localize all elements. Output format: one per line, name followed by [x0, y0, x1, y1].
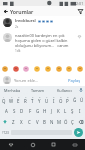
staticText: J [51, 108, 53, 114]
button[interactable]: M [55, 116, 62, 127]
staticText: 2 [11, 95, 13, 98]
button[interactable]: Emoji [77, 66, 83, 72]
staticText: lreokbursl [15, 18, 36, 24]
staticText: I [79, 108, 81, 114]
button[interactable]: B [41, 116, 48, 127]
button[interactable]: Tamam [25, 86, 51, 94]
staticText: L [64, 108, 67, 114]
button[interactable]: S [10, 105, 18, 116]
button[interactable]: Keyboard [64, 139, 85, 150]
button[interactable]: H [41, 105, 48, 116]
staticText: 2s [15, 25, 19, 29]
button[interactable]: Recents [43, 139, 64, 150]
button[interactable]: Like [76, 33, 82, 39]
staticText: Y [38, 98, 41, 104]
button[interactable]: Emoji [56, 66, 62, 72]
staticText: 8 [53, 95, 55, 98]
staticText: 6 [39, 95, 41, 98]
staticText: W [9, 98, 14, 104]
button[interactable]: Home [22, 139, 43, 150]
button[interactable]: Emoji [45, 66, 51, 72]
button[interactable]: N [48, 116, 55, 127]
staticText: O [59, 98, 63, 104]
staticText: V [36, 119, 39, 125]
button[interactable]: Ö [62, 116, 69, 127]
button[interactable]: V [33, 116, 41, 127]
button[interactable]: Back [0, 6, 10, 16]
button[interactable]: I [76, 105, 83, 116]
button[interactable]: F [26, 105, 34, 116]
button[interactable]: Yorum ekle... [14, 78, 67, 83]
staticText: B [43, 119, 46, 125]
button[interactable]: 8 [50, 94, 57, 105]
button[interactable]: 7 [43, 94, 50, 105]
staticText: 4 [25, 95, 27, 98]
button[interactable]: 2 [8, 94, 15, 105]
staticText: R [24, 98, 27, 104]
staticText: M [57, 119, 61, 125]
button[interactable]: Ü [78, 94, 85, 105]
button[interactable]: G [34, 105, 41, 116]
button[interactable]: A [2, 105, 10, 116]
staticText: H [43, 108, 47, 114]
staticText: A [5, 108, 8, 114]
button[interactable]: Emoji [34, 66, 40, 72]
staticText: 9 [60, 95, 62, 98]
button[interactable]: Emoji [23, 66, 29, 72]
button[interactable]: Shift [0, 116, 9, 127]
button[interactable]: K [55, 105, 62, 116]
button[interactable]: Emoji [13, 66, 19, 72]
button[interactable]: 0 [64, 94, 71, 105]
staticText: Ğ [73, 97, 77, 103]
button[interactable]: 4 [22, 94, 29, 105]
button[interactable]: Kullanıcı [51, 86, 77, 94]
button[interactable]: Emoji [66, 66, 72, 72]
staticText: S [13, 108, 16, 114]
staticText: nazaltin00 kardeşim en çok hoşuma giden … [15, 33, 76, 48]
staticText: C [28, 119, 31, 125]
staticText: Ö [64, 119, 68, 125]
button[interactable]: Filter [75, 6, 85, 16]
button[interactable]: lreokbursl [0, 16, 85, 31]
staticText: Ş [71, 108, 74, 114]
button[interactable]: nazaltin00 kardeşim en çok hoşuma giden … [0, 31, 85, 55]
button[interactable]: X [17, 116, 25, 127]
button[interactable]: Backspace [76, 116, 85, 127]
staticText: 0 [67, 95, 69, 98]
staticText: Yorum ekle... [14, 78, 39, 83]
button[interactable]: Ğ [71, 94, 78, 105]
staticText: Yorumlar [10, 8, 34, 15]
staticText: 7 [46, 95, 48, 98]
button[interactable]: Ç [69, 116, 76, 127]
button[interactable]: J [48, 105, 55, 116]
staticText: K [57, 108, 60, 114]
staticText: E [17, 98, 20, 104]
staticText: Ç [71, 119, 74, 125]
staticText: I [53, 98, 55, 104]
button[interactable]: D [18, 105, 26, 116]
button[interactable]: 9 [57, 94, 64, 105]
button[interactable]: Back [0, 139, 22, 150]
button[interactable]: 1 [0, 94, 8, 105]
button[interactable]: 6 [36, 94, 43, 105]
staticText: Z [12, 119, 15, 125]
staticText: Tamam [31, 88, 45, 93]
button[interactable]: C [25, 116, 33, 127]
button[interactable]: ?123 [1, 127, 10, 138]
button[interactable]: Send [74, 128, 83, 137]
button[interactable]: Emoji [2, 66, 8, 72]
staticText: 1 [3, 95, 5, 98]
button[interactable]: Z [9, 116, 17, 127]
button[interactable]: Merhaba [0, 86, 25, 94]
button[interactable]: 3 [15, 94, 22, 105]
staticText: P [66, 98, 69, 104]
button[interactable]: 5 [29, 94, 36, 105]
button[interactable]: Paylaş [67, 78, 82, 83]
button[interactable]: L [62, 105, 69, 116]
staticText: 3 [18, 95, 20, 98]
staticText: N [50, 119, 54, 125]
button[interactable]: Ş [69, 105, 76, 116]
staticText: ?123 [2, 131, 9, 135]
button[interactable]: Voice input [77, 86, 85, 94]
